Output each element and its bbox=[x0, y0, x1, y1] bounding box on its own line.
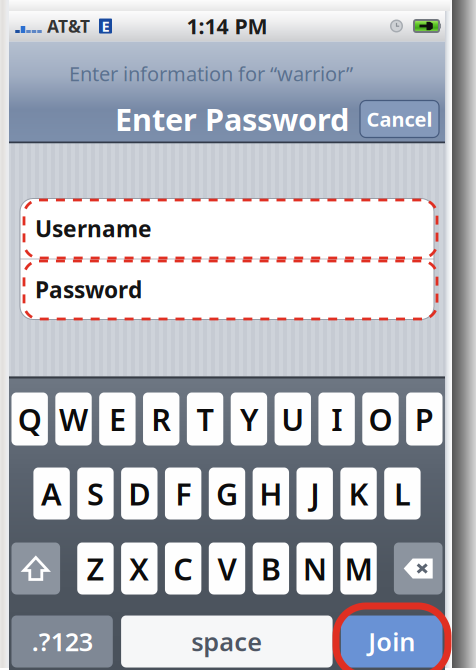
button[interactable]: C bbox=[165, 542, 201, 594]
staticText: A bbox=[41, 473, 62, 514]
button[interactable]: P bbox=[406, 392, 442, 445]
staticText: K bbox=[349, 473, 369, 514]
button[interactable]: E bbox=[99, 392, 136, 445]
staticText: G bbox=[216, 473, 238, 514]
staticText: E bbox=[101, 16, 109, 36]
staticText: F bbox=[175, 473, 191, 514]
staticText: B bbox=[261, 548, 281, 589]
button[interactable]: U bbox=[275, 392, 311, 445]
button[interactable]: A bbox=[33, 467, 70, 519]
button[interactable]: K bbox=[340, 467, 377, 519]
button[interactable]: Delete bbox=[394, 542, 442, 594]
staticText: P bbox=[415, 399, 434, 439]
button[interactable]: G bbox=[209, 467, 245, 519]
button[interactable]: Q bbox=[11, 392, 48, 445]
button[interactable]: M bbox=[340, 542, 377, 594]
button[interactable]: N bbox=[296, 542, 333, 594]
staticText: D bbox=[128, 473, 150, 514]
staticText: H bbox=[259, 473, 282, 514]
button[interactable]: R bbox=[143, 392, 179, 445]
button[interactable]: S bbox=[77, 467, 114, 519]
staticText: R bbox=[151, 399, 171, 439]
staticText: .?123 bbox=[32, 625, 93, 658]
staticText: Password bbox=[35, 274, 142, 304]
staticText: Username bbox=[35, 213, 152, 243]
button[interactable]: .?123 bbox=[11, 615, 113, 667]
staticText: Join bbox=[368, 625, 415, 658]
staticText: Enter Password bbox=[115, 99, 349, 139]
button[interactable]: I bbox=[318, 392, 355, 445]
staticText: Q bbox=[18, 399, 42, 439]
staticText: C bbox=[173, 548, 193, 589]
button[interactable]: Username bbox=[20, 198, 434, 258]
button[interactable]: Cancel bbox=[360, 100, 439, 137]
staticText: T bbox=[197, 399, 214, 439]
button[interactable]: Z bbox=[77, 542, 114, 594]
staticText: S bbox=[87, 473, 104, 514]
staticText: X bbox=[129, 548, 149, 589]
staticText: Enter information for “warrior” bbox=[69, 60, 353, 87]
button[interactable]: B bbox=[253, 542, 289, 594]
staticText: I bbox=[331, 399, 342, 439]
button[interactable]: V bbox=[209, 542, 245, 594]
button[interactable]: Shift bbox=[11, 542, 60, 594]
button[interactable]: X bbox=[121, 542, 157, 594]
button[interactable]: Password bbox=[20, 259, 434, 319]
button[interactable]: Join bbox=[341, 615, 442, 667]
button[interactable]: H bbox=[253, 467, 289, 519]
staticText: Cancel bbox=[366, 106, 432, 132]
staticText: space bbox=[191, 625, 262, 658]
staticText: U bbox=[281, 399, 304, 439]
button[interactable]: Y bbox=[231, 392, 267, 445]
staticText: Z bbox=[86, 548, 104, 589]
button[interactable]: J bbox=[296, 467, 333, 519]
button[interactable]: T bbox=[187, 392, 223, 445]
button[interactable]: O bbox=[362, 392, 399, 445]
staticText: 1:14 PM bbox=[186, 12, 267, 40]
staticText: O bbox=[368, 399, 392, 439]
button[interactable]: L bbox=[384, 467, 421, 519]
button[interactable]: D bbox=[121, 467, 157, 519]
staticText: Y bbox=[240, 399, 258, 439]
button[interactable]: W bbox=[55, 392, 92, 445]
staticText: E bbox=[109, 399, 126, 439]
staticText: J bbox=[310, 473, 319, 514]
staticText: L bbox=[394, 473, 411, 514]
staticText: M bbox=[345, 548, 373, 589]
button[interactable]: space bbox=[121, 615, 333, 667]
staticText: AT&T bbox=[47, 14, 90, 37]
button[interactable]: F bbox=[165, 467, 201, 519]
staticText: V bbox=[217, 548, 236, 589]
staticText: N bbox=[303, 548, 327, 589]
staticText: W bbox=[59, 399, 88, 439]
